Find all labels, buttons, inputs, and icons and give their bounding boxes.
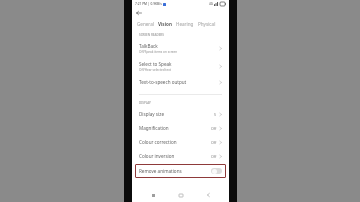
staticText: SCREEN READERS — [139, 33, 164, 37]
button[interactable]: Display size — [132, 107, 229, 121]
button[interactable]: Colour inversion — [132, 149, 229, 163]
button[interactable]: Select to Speak — [132, 57, 229, 75]
button[interactable]: Recents — [147, 189, 159, 201]
staticText: Hearing — [176, 21, 194, 27]
button[interactable]: Back — [136, 8, 229, 18]
button[interactable]: Remove animations — [135, 164, 226, 178]
staticText: TalkBack — [139, 43, 158, 49]
staticText: Off — [211, 154, 217, 159]
staticText: 5 — [214, 112, 217, 117]
button[interactable]: Vision — [158, 21, 172, 27]
button[interactable]: Magnification — [132, 121, 229, 135]
staticText: Remove animations — [139, 168, 182, 174]
staticText: Select to Speak — [139, 61, 172, 67]
staticText: Physical — [198, 21, 216, 27]
staticText: Colour correction — [139, 139, 177, 145]
button[interactable]: TalkBack — [132, 39, 229, 57]
staticText: General — [137, 21, 154, 27]
button[interactable]: Back — [202, 189, 214, 201]
button[interactable]: Home — [175, 189, 187, 201]
staticText: Text-to-speech output — [139, 79, 187, 85]
button[interactable]: Hearing — [176, 21, 194, 27]
staticText: Vision — [158, 21, 172, 27]
button[interactable]: General — [137, 21, 154, 27]
staticText: Colour inversion — [139, 153, 175, 159]
staticText: DISPLAY — [139, 101, 151, 105]
staticText: Off/Speak items on screen — [139, 50, 178, 54]
button[interactable]: Physical — [198, 21, 216, 27]
button[interactable]: Text-to-speech output — [132, 75, 229, 89]
staticText: Off — [211, 126, 217, 131]
staticText: Off — [211, 140, 217, 145]
staticText: 4G — [209, 2, 213, 6]
button[interactable]: Colour correction — [132, 135, 229, 149]
staticText: Off/Hear selected text — [139, 68, 171, 72]
staticText: 7:21 PM | 0.9KB/s — [135, 2, 162, 6]
staticText: Magnification — [139, 125, 169, 131]
staticText: Display size — [139, 111, 164, 117]
